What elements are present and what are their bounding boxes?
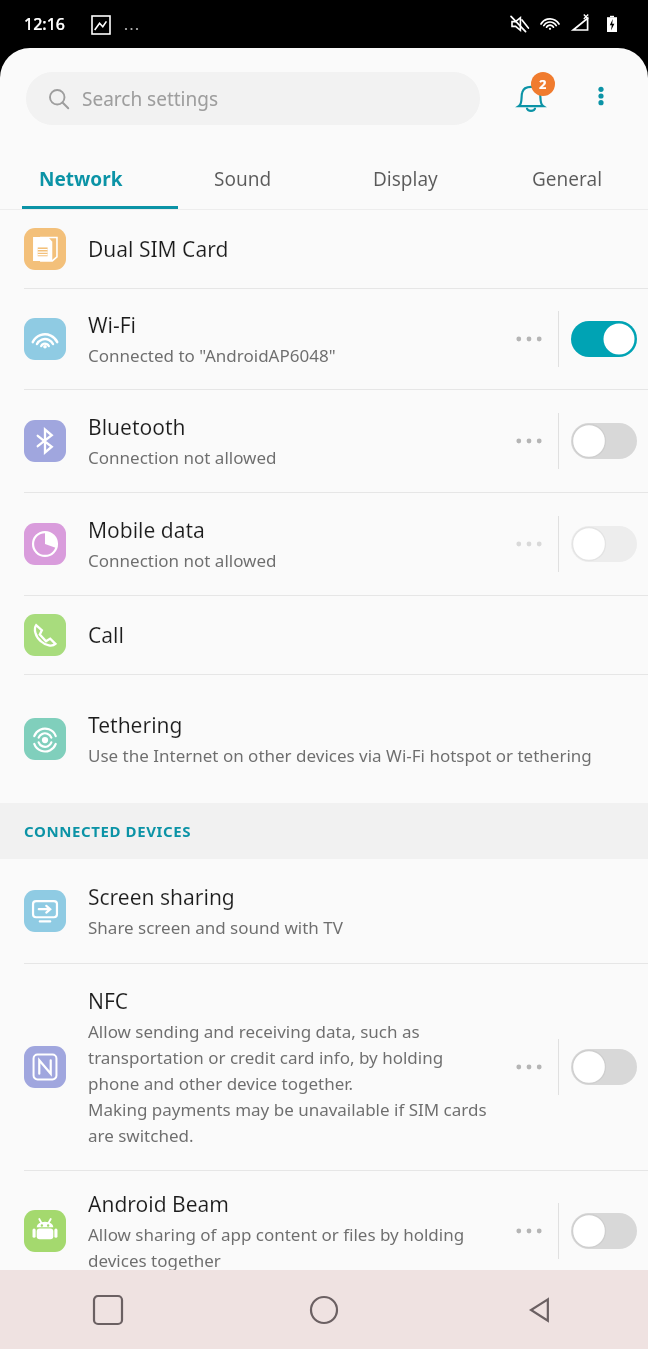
staticText: Bluetooth	[88, 413, 186, 442]
staticText: Search settings	[82, 86, 219, 112]
staticText: CONNECTED DEVICES	[24, 821, 192, 841]
button[interactable]: Bluetooth	[0, 390, 648, 492]
button[interactable]: Display	[324, 148, 486, 210]
staticText: Display	[373, 166, 438, 192]
staticText: Sound	[214, 166, 272, 192]
staticText: Call	[88, 621, 124, 650]
button[interactable]: General	[486, 148, 648, 210]
button[interactable]: More options	[575, 70, 627, 122]
button[interactable]: Call	[0, 596, 648, 674]
staticText: Connected to "AndroidAP6048"	[88, 344, 336, 367]
button[interactable]: NFC toggle	[559, 964, 648, 1170]
button[interactable]: Wi-Fi toggle	[559, 289, 648, 389]
staticText: Android Beam	[88, 1190, 229, 1219]
button[interactable]: Android Beam	[0, 1171, 648, 1291]
button[interactable]: Bluetooth options	[500, 390, 558, 492]
staticText: Use the Internet on other devices via Wi…	[88, 744, 592, 767]
button[interactable]: Tethering	[0, 675, 648, 803]
button[interactable]: NFC options	[500, 964, 558, 1170]
staticText: Allow sharing of app content or files by…	[88, 1223, 488, 1272]
staticText: NFC	[88, 987, 129, 1016]
button[interactable]: Mobile data	[0, 493, 648, 595]
button[interactable]: Notifications	[503, 70, 559, 126]
staticText: Allow sending and receiving data, such a…	[88, 1020, 488, 1147]
staticText: Network	[39, 166, 123, 192]
staticText: Mobile data	[88, 516, 205, 545]
button[interactable]: Sound	[162, 148, 324, 210]
staticText: Connection not allowed	[88, 446, 277, 469]
button[interactable]: Search settings	[26, 72, 480, 125]
button[interactable]: Home	[216, 1270, 432, 1349]
staticText: Share screen and sound with TV	[88, 916, 343, 939]
button[interactable]: Network	[0, 148, 162, 210]
staticText: Screen sharing	[88, 883, 235, 912]
button[interactable]: Screen sharing	[0, 859, 648, 963]
button[interactable]: Back	[432, 1270, 648, 1349]
staticText: General	[532, 166, 603, 192]
button[interactable]: Wi-Fi options	[500, 289, 558, 389]
button[interactable]: Android Beam options	[500, 1171, 558, 1291]
staticText: Wi-Fi	[88, 311, 137, 340]
button[interactable]: Wi-Fi	[0, 289, 648, 389]
staticText: Tethering	[88, 711, 183, 740]
staticText: 12:16	[24, 13, 65, 35]
staticText: Connection not allowed	[88, 549, 277, 572]
button[interactable]: Recents	[0, 1270, 216, 1349]
staticText: 2	[539, 75, 547, 93]
staticText: Dual SIM Card	[88, 235, 229, 264]
button[interactable]: Bluetooth toggle	[559, 390, 648, 492]
button[interactable]: NFC	[0, 964, 648, 1170]
button[interactable]: Mobile data toggle	[559, 493, 648, 595]
button[interactable]: Dual SIM Card	[0, 210, 648, 288]
button[interactable]: Android Beam toggle	[559, 1171, 648, 1291]
